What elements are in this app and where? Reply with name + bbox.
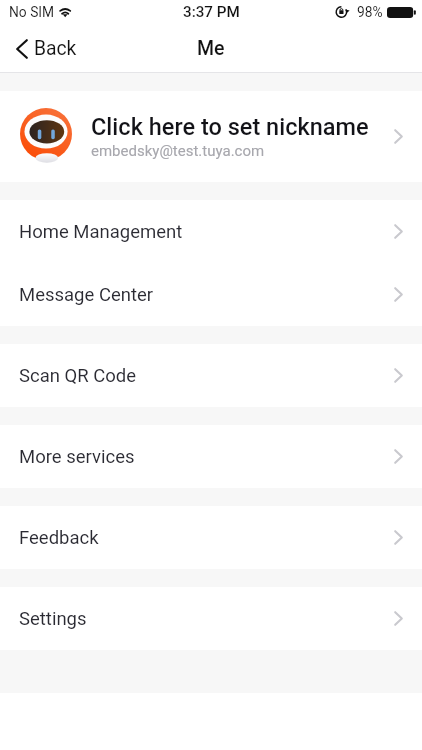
staticText: Scan QR Code: [19, 365, 394, 387]
staticText: Back: [34, 37, 77, 60]
button[interactable]: Feedback: [0, 506, 422, 569]
staticText: 98%: [357, 4, 383, 20]
button[interactable]: Click here to set nickname: [0, 91, 422, 182]
button[interactable]: Settings: [0, 587, 422, 650]
button[interactable]: Scan QR Code: [0, 344, 422, 407]
button[interactable]: Back: [0, 31, 87, 66]
staticText: Me: [197, 37, 225, 60]
other: Open: [394, 287, 403, 302]
staticText: Click here to set nickname: [91, 113, 369, 141]
staticText: Message Center: [19, 284, 394, 306]
button[interactable]: More services: [0, 425, 422, 488]
other: Open: [394, 368, 403, 383]
other: Open: [394, 611, 403, 626]
staticText: embedsky@test.tuya.com: [91, 142, 265, 160]
staticText: 3:37 PM: [183, 3, 240, 21]
staticText: No SIM: [9, 4, 55, 20]
button[interactable]: Message Center: [0, 263, 422, 326]
staticText: Settings: [19, 608, 394, 630]
button[interactable]: Home Management: [0, 200, 422, 263]
staticText: Home Management: [19, 221, 394, 243]
other: Open: [394, 449, 403, 464]
other: Open: [394, 224, 403, 239]
staticText: Feedback: [19, 527, 394, 549]
other: Open: [394, 129, 403, 144]
other: Open: [394, 530, 403, 545]
staticText: More services: [19, 446, 394, 468]
